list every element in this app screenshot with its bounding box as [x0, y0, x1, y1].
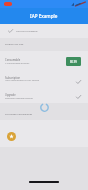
staticText: The store is available [16, 30, 38, 33]
staticText: A consumable product [5, 62, 30, 65]
button[interactable]: Purchased consumable [7, 132, 16, 141]
button[interactable]: Purchased [76, 80, 81, 84]
button[interactable] [0, 53, 88, 70]
button[interactable]: Purchased [76, 95, 81, 99]
staticText: IAP Example [30, 13, 58, 19]
staticText: $0.99 [70, 60, 77, 64]
staticText: Your subscription to our service [5, 79, 40, 82]
staticText: Premium upgrade forever [5, 97, 33, 100]
staticText: Upgrade [5, 93, 16, 97]
button[interactable]: $0.99 [66, 57, 81, 66]
staticText: Products for Sale [5, 43, 24, 46]
button[interactable] [0, 71, 88, 88]
staticText: Consumable [5, 58, 21, 62]
staticText: Purchased Consumables [5, 112, 33, 115]
staticText: Subscription [5, 76, 21, 80]
button[interactable]: The store is available [0, 24, 88, 38]
button[interactable] [0, 88, 88, 105]
